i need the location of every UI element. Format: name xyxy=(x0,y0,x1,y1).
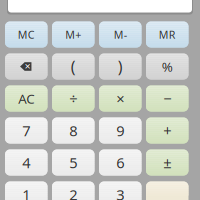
button[interactable]: ( xyxy=(52,53,94,79)
staticText: 6 xyxy=(116,153,124,172)
button[interactable]: 7 xyxy=(5,117,47,143)
button[interactable]: 4 xyxy=(5,149,47,175)
staticText: 3 xyxy=(116,185,124,200)
button[interactable]: M+ xyxy=(52,21,94,47)
staticText: ) xyxy=(118,56,123,77)
staticText: M- xyxy=(114,27,127,42)
button[interactable]: M- xyxy=(99,21,141,47)
staticText: 9 xyxy=(116,121,124,140)
staticText: − xyxy=(163,89,171,108)
button[interactable]: 2 xyxy=(52,181,94,200)
staticText: ( xyxy=(71,56,76,77)
staticText: + xyxy=(163,121,171,140)
button[interactable]: = xyxy=(146,181,188,200)
staticText: 1 xyxy=(22,185,30,200)
staticText: × xyxy=(116,89,124,108)
staticText: 4 xyxy=(22,153,30,172)
staticText: ✕ xyxy=(24,62,31,71)
button[interactable]: ± xyxy=(146,149,188,175)
button[interactable]: 9 xyxy=(99,117,141,143)
button[interactable]: × xyxy=(99,85,141,111)
button[interactable]: + xyxy=(146,117,188,143)
button[interactable]: − xyxy=(146,85,188,111)
staticText: ± xyxy=(163,153,171,172)
staticText: 7 xyxy=(22,121,30,140)
button[interactable]: MR xyxy=(146,21,188,47)
staticText: M+ xyxy=(65,27,81,42)
button[interactable]: ) xyxy=(99,53,141,79)
button[interactable]: AC xyxy=(5,85,47,111)
staticText: 2 xyxy=(69,185,77,200)
button[interactable]: % xyxy=(146,53,188,79)
staticText: % xyxy=(162,58,173,75)
button[interactable]: 8 xyxy=(52,117,94,143)
staticText: MC xyxy=(18,27,35,42)
staticText: 5 xyxy=(69,153,77,172)
button[interactable]: MC xyxy=(5,21,47,47)
button[interactable]: ÷ xyxy=(52,85,94,111)
button[interactable]: 5 xyxy=(52,149,94,175)
staticText: MR xyxy=(159,27,176,42)
button[interactable]: 6 xyxy=(99,149,141,175)
button[interactable]: 3 xyxy=(99,181,141,200)
staticText: 8 xyxy=(69,121,77,140)
staticText: AC xyxy=(18,90,34,107)
staticText: ÷ xyxy=(69,89,77,108)
button[interactable]: 1 xyxy=(5,181,47,200)
button[interactable]: Delete xyxy=(5,53,47,79)
